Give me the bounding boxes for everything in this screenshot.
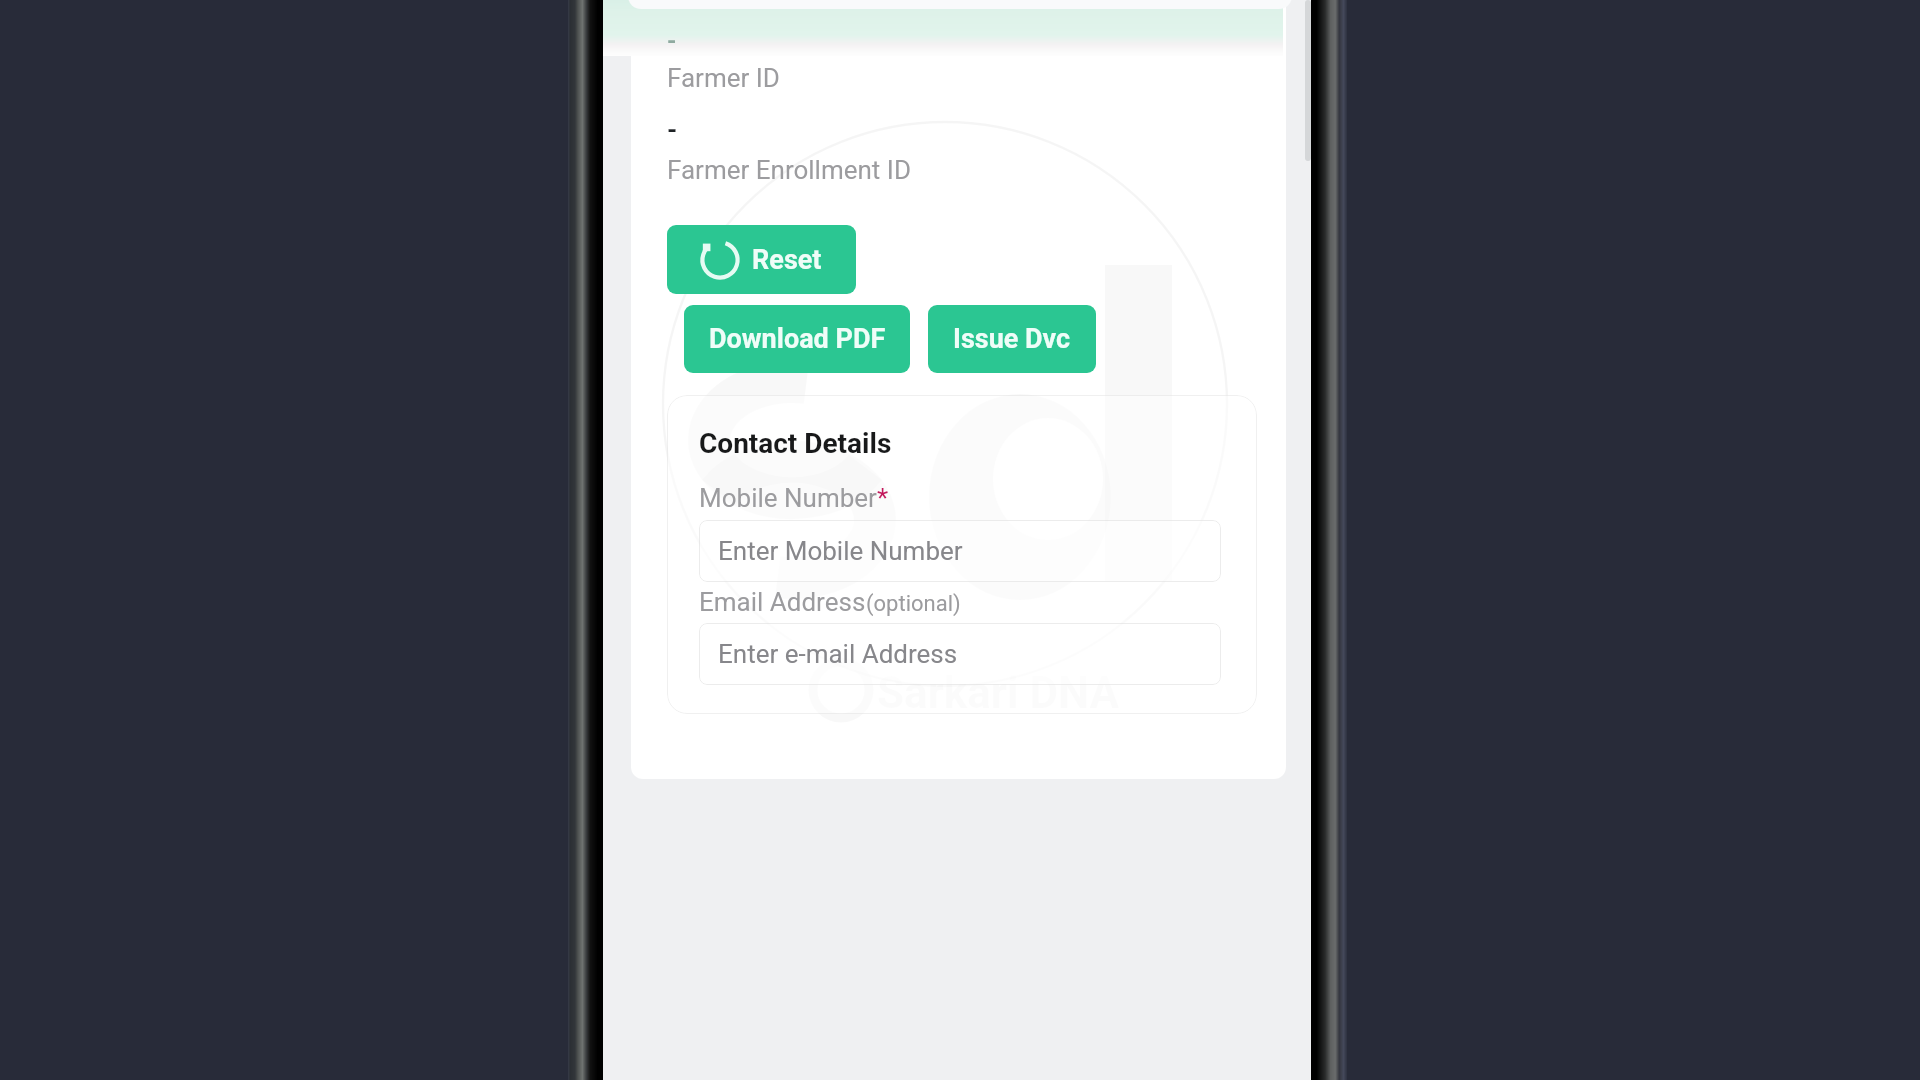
staticText: Contact Details	[699, 427, 892, 460]
button[interactable]: Enter e-mail Address	[699, 623, 1221, 685]
staticText: Download PDF	[709, 323, 886, 355]
staticText: Enter Mobile Number	[718, 536, 963, 566]
staticText: -	[667, 115, 678, 145]
staticText: Mobile Number	[699, 483, 877, 513]
button[interactable]: Download PDF	[684, 305, 910, 373]
staticText: Farmer Enrollment ID	[667, 155, 911, 185]
staticText: Farmer ID	[667, 63, 780, 93]
staticText: *	[877, 483, 889, 513]
staticText: Enter e-mail Address	[718, 639, 958, 669]
button[interactable]: Issue Dvc	[928, 305, 1096, 373]
staticText: Sarkari DNA	[877, 667, 1120, 719]
staticText: Reset	[752, 244, 822, 276]
staticText: -	[667, 27, 677, 55]
other: Reset	[700, 240, 740, 280]
staticText: Email Address	[699, 587, 866, 617]
button[interactable]: Enter Mobile Number	[699, 520, 1221, 582]
button[interactable]: Reset	[667, 225, 856, 294]
staticText: (optional)	[866, 591, 961, 617]
staticText: Issue Dvc	[953, 323, 1071, 355]
